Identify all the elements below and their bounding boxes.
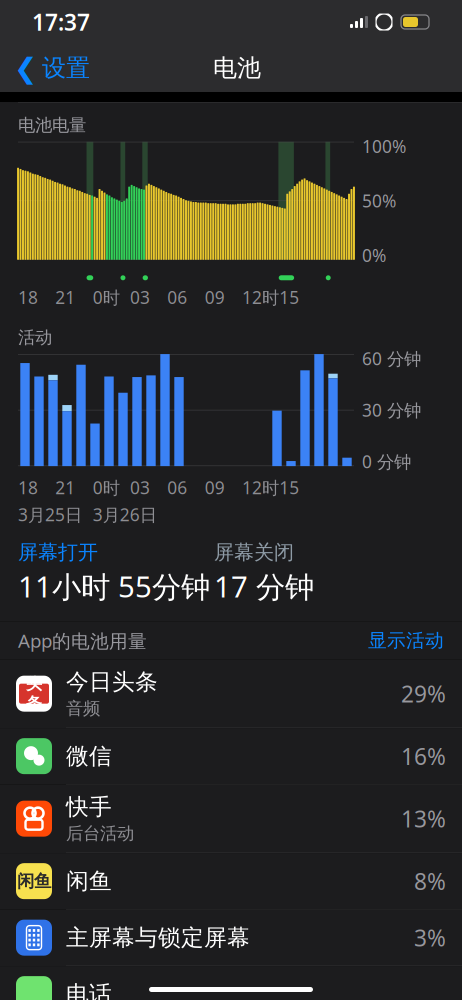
staticText: 16% xyxy=(401,741,446,771)
button[interactable]: 主屏幕与锁定屏幕 xyxy=(0,910,462,966)
staticText: 0时 xyxy=(93,286,120,309)
staticText: 21 xyxy=(55,476,75,499)
staticText: 11小时 55分钟 xyxy=(18,567,210,606)
staticText: 03 xyxy=(130,286,150,309)
staticText: 12时 xyxy=(242,476,279,499)
staticText: 活动 xyxy=(18,327,52,348)
button[interactable]: 显示活动 xyxy=(368,629,444,652)
staticText: 15 xyxy=(279,476,299,499)
staticText: 0% xyxy=(362,244,386,267)
staticText: 屏幕打开 xyxy=(18,540,98,565)
button[interactable]: 快手 xyxy=(0,785,462,853)
button[interactable]: 电话 xyxy=(0,966,462,1000)
staticText: 屏幕关闭 xyxy=(214,540,294,565)
staticText: 设置 xyxy=(42,53,90,83)
staticText: App的电池用量 xyxy=(18,628,147,653)
button[interactable]: ❮ xyxy=(0,46,90,90)
staticText: 03 xyxy=(130,476,150,499)
staticText: 15 xyxy=(279,286,299,309)
staticText: 29% xyxy=(401,679,446,709)
staticText: 0 分钟 xyxy=(362,450,411,473)
staticText: 今日头条 xyxy=(66,668,158,696)
button[interactable]: 闲鱼 xyxy=(0,853,462,910)
staticText: 电话 xyxy=(66,980,112,1000)
staticText: 09 xyxy=(205,286,225,309)
staticText: 18 xyxy=(18,286,38,309)
button[interactable]: 微信 xyxy=(0,728,462,785)
staticText: 21 xyxy=(55,286,75,309)
staticText: 闲鱼 xyxy=(17,870,51,892)
staticText: 60 分钟 xyxy=(362,347,421,370)
staticText: 12时 xyxy=(242,286,279,309)
button[interactable]: 头条 xyxy=(0,660,462,728)
staticText: 闲鱼 xyxy=(66,867,112,895)
staticText: 主屏幕与锁定屏幕 xyxy=(66,924,250,951)
staticText: 8% xyxy=(414,866,446,896)
staticText: 电池电量 xyxy=(18,114,86,136)
staticText: 0时 xyxy=(93,476,120,499)
staticText: 3月26日 xyxy=(93,503,157,526)
staticText: 音频 xyxy=(66,698,100,719)
staticText: 06 xyxy=(167,286,187,309)
staticText: 3% xyxy=(414,923,446,953)
staticText: ❮ xyxy=(14,52,37,84)
staticText: 后台活动 xyxy=(66,823,134,844)
staticText: 09 xyxy=(205,476,225,499)
staticText: 17 分钟 xyxy=(214,567,314,606)
staticText: 显示活动 xyxy=(368,629,444,652)
staticText: 100% xyxy=(362,135,406,158)
staticText: 3月25日 xyxy=(18,503,82,526)
staticText: 06 xyxy=(167,476,187,499)
staticText: 50% xyxy=(362,189,396,212)
staticText: 快手 xyxy=(66,793,112,821)
staticText: 13% xyxy=(401,804,446,834)
staticText: 30 分钟 xyxy=(362,399,421,422)
staticText: 电池 xyxy=(213,53,261,83)
staticText: 头条 xyxy=(26,674,42,713)
staticText: 18 xyxy=(18,476,38,499)
staticText: 17:37 xyxy=(32,7,90,37)
staticText: 微信 xyxy=(66,742,112,770)
